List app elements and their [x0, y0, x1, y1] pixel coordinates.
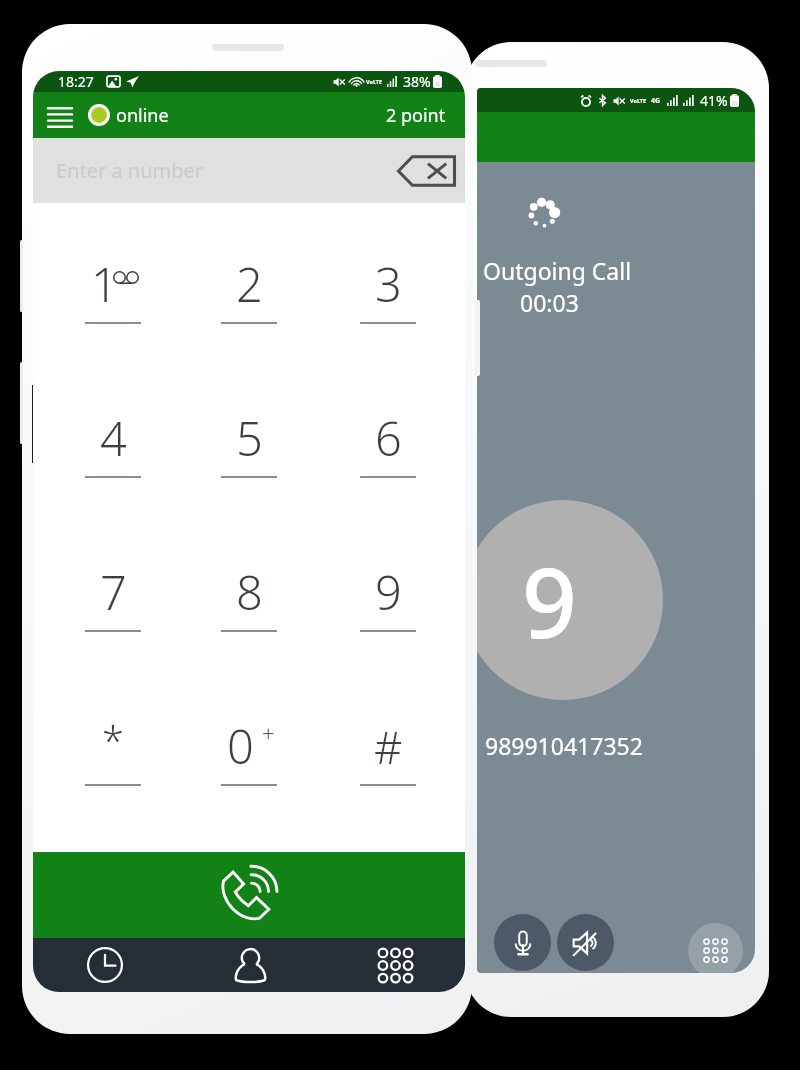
- staticText: 4G: [651, 96, 661, 106]
- staticText: 7: [100, 560, 127, 624]
- staticText: 6: [375, 406, 402, 470]
- button[interactable]: Backspace: [397, 155, 456, 187]
- staticText: VoLTE: [366, 78, 383, 85]
- staticText: +: [262, 718, 275, 748]
- button[interactable]: 9: [324, 524, 452, 668]
- staticText: 4: [100, 406, 127, 470]
- button[interactable]: 5: [185, 370, 313, 514]
- staticText: 0: [227, 714, 254, 778]
- button[interactable]: 2: [185, 216, 313, 360]
- staticText: Enter a number: [56, 157, 204, 184]
- staticText: 989910417352: [485, 730, 643, 761]
- staticText: 9: [522, 535, 577, 666]
- staticText: 00:03: [520, 287, 579, 318]
- staticText: *: [102, 713, 125, 767]
- button[interactable]: Contacts: [200, 938, 300, 992]
- button[interactable]: 2 point: [386, 103, 446, 128]
- button[interactable]: Recents: [55, 938, 155, 992]
- staticText: online: [116, 103, 169, 128]
- button[interactable]: Mute microphone: [494, 914, 551, 971]
- button[interactable]: Call: [33, 852, 465, 938]
- button[interactable]: Speaker off: [557, 914, 614, 971]
- staticText: Outgoing Call: [483, 255, 632, 286]
- button[interactable]: Dialpad: [345, 938, 445, 992]
- button[interactable]: 3: [324, 216, 452, 360]
- button[interactable]: Menu: [38, 97, 82, 138]
- button[interactable]: 7: [49, 524, 177, 668]
- staticText: 9: [375, 560, 402, 624]
- button[interactable]: Dialpad: [688, 923, 743, 973]
- button[interactable]: #: [324, 678, 452, 822]
- button[interactable]: 1: [49, 216, 177, 360]
- staticText: 8: [236, 560, 263, 624]
- button[interactable]: *: [49, 678, 177, 822]
- staticText: 5: [236, 406, 263, 470]
- staticText: #: [374, 717, 403, 777]
- staticText: 1: [91, 252, 118, 316]
- button[interactable]: 8: [185, 524, 313, 668]
- staticText: 3: [375, 252, 402, 316]
- staticText: 41%: [700, 91, 728, 110]
- staticText: 38%: [403, 72, 431, 91]
- button[interactable]: 6: [324, 370, 452, 514]
- button[interactable]: 4: [49, 370, 177, 514]
- button[interactable]: 0: [185, 678, 313, 822]
- staticText: 2: [236, 252, 263, 316]
- staticText: 18:27: [58, 72, 94, 91]
- staticText: VoLTE: [630, 97, 647, 104]
